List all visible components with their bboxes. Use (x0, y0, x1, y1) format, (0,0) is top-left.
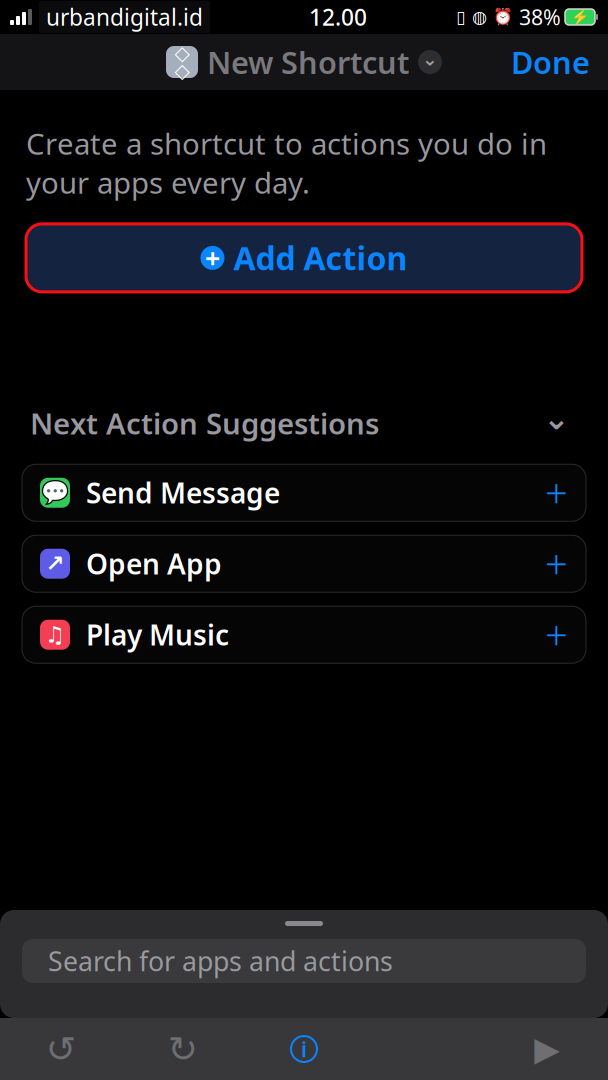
staticText: + (205, 240, 220, 276)
staticText: ◇ (174, 42, 189, 64)
staticText: Play Music (86, 616, 229, 653)
staticText: Done (511, 42, 590, 82)
staticText: 12.00 (309, 2, 367, 32)
staticText: ⌄ (422, 48, 438, 70)
button[interactable]: ♫ (22, 606, 586, 663)
button[interactable]: ↗ (22, 535, 586, 592)
button[interactable]: Redo (122, 1018, 243, 1080)
button[interactable]: Done (493, 34, 608, 90)
staticText: Search for apps and actions (48, 943, 393, 979)
button[interactable]: Undo (0, 1018, 122, 1080)
staticText: Create a shortcut to actions you do in y… (26, 124, 547, 202)
button[interactable]: + (0, 224, 608, 292)
button[interactable]: 􀊫 (22, 939, 586, 983)
button[interactable]: 💬 (22, 464, 586, 521)
staticText: ◍ (472, 7, 487, 27)
staticText: ▶ (534, 1030, 560, 1068)
staticText: Send Message (86, 474, 280, 511)
staticText: 38% (519, 3, 561, 31)
staticText: ⏰ (493, 8, 513, 26)
staticText: ↻ (167, 1029, 197, 1069)
button[interactable]: Collapse suggestions (535, 400, 578, 446)
staticText: New Shortcut (207, 42, 409, 82)
staticText: ⌄ (543, 400, 570, 436)
staticText: i (301, 1035, 307, 1063)
staticText: ↺ (46, 1029, 76, 1069)
staticText: ♫ (45, 622, 65, 648)
staticText: ↗ (45, 551, 64, 577)
staticText: + (545, 466, 568, 519)
staticText: + (545, 537, 568, 590)
button[interactable]: Play (486, 1018, 608, 1080)
staticText: ⚡ (571, 9, 589, 25)
staticText: urbandigital.id (46, 2, 203, 32)
staticText: Open App (86, 545, 222, 582)
button[interactable]: ◇ (166, 42, 442, 82)
button[interactable]: Details (243, 1018, 365, 1080)
staticText: Next Action Suggestions (30, 404, 379, 443)
staticText: Add Action (233, 237, 407, 279)
staticText: ◇ (174, 59, 189, 82)
staticText: 💬 (41, 480, 69, 506)
staticText: + (545, 608, 568, 661)
staticText: ▯ (456, 7, 466, 27)
